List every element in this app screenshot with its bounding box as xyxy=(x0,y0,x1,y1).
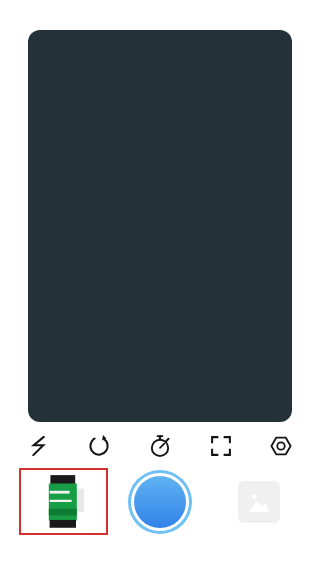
button[interactable]: Viewfinder xyxy=(28,30,292,422)
button[interactable]: Gallery xyxy=(238,481,280,523)
button[interactable]: Shutter xyxy=(128,470,192,534)
button[interactable]: Film stock xyxy=(19,468,108,535)
button[interactable]: Aspect ratio xyxy=(199,430,243,462)
button[interactable]: Timer xyxy=(138,430,182,462)
button[interactable]: Settings xyxy=(259,430,303,462)
button[interactable]: Flash xyxy=(17,430,61,462)
button[interactable]: Switch camera xyxy=(77,430,121,462)
